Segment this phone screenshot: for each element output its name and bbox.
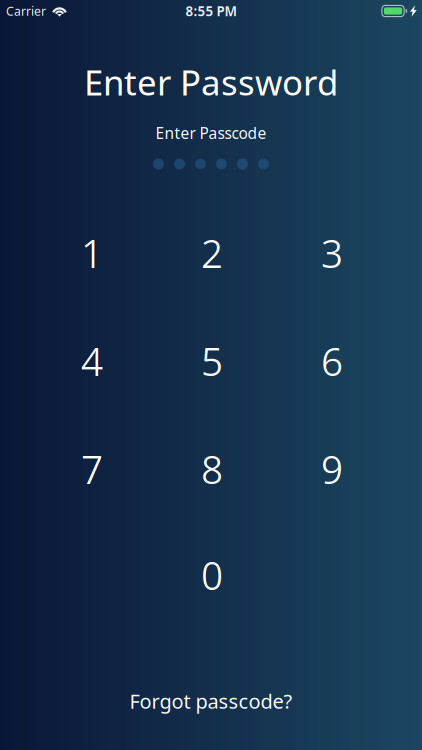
staticText: Carrier — [6, 3, 46, 19]
staticText: 9 — [321, 443, 343, 495]
staticText: 8 — [201, 443, 223, 495]
staticText: 3 — [321, 227, 343, 279]
button[interactable]: 6 — [289, 318, 375, 404]
button[interactable]: 3 — [289, 210, 375, 296]
staticText: 1 — [81, 227, 103, 279]
button[interactable]: 2 — [169, 210, 255, 296]
staticText: Forgot passcode? — [129, 687, 292, 715]
button[interactable]: 0 — [169, 532, 255, 618]
staticText: 8:55 PM — [185, 2, 236, 20]
staticText: 7 — [81, 443, 103, 495]
button[interactable]: 7 — [49, 426, 135, 512]
button[interactable]: 4 — [49, 318, 135, 404]
button[interactable]: 1 — [49, 210, 135, 296]
staticText: 6 — [321, 335, 343, 387]
staticText: 0 — [201, 549, 223, 601]
button[interactable]: 5 — [169, 318, 255, 404]
staticText: Enter Password — [84, 58, 338, 106]
button[interactable]: Forgot passcode? — [111, 676, 310, 726]
staticText: 2 — [201, 227, 223, 279]
staticText: 5 — [201, 335, 223, 387]
button[interactable]: 8 — [169, 426, 255, 512]
staticText: 4 — [81, 335, 103, 387]
button[interactable]: 9 — [289, 426, 375, 512]
staticText: Enter Passcode — [155, 122, 266, 144]
